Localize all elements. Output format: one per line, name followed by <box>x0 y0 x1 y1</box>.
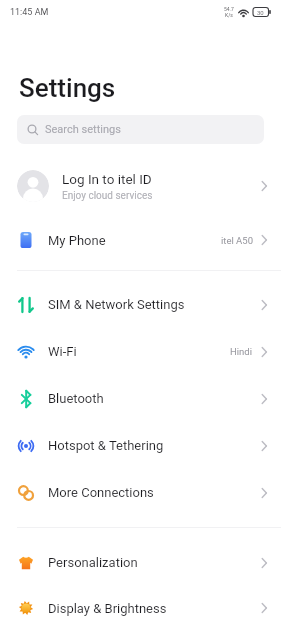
staticText: 54.7 <box>224 6 234 12</box>
button[interactable]: My Phone <box>0 213 281 267</box>
staticText: Bluetooth <box>48 391 104 406</box>
staticText: K/s <box>225 12 233 18</box>
staticText: Hotspot & Tethering <box>48 438 164 453</box>
staticText: My Phone <box>48 233 106 248</box>
staticText: Search settings <box>45 123 121 136</box>
button[interactable]: More Connections <box>0 469 281 516</box>
staticText: Settings <box>19 73 116 103</box>
staticText: Log In to itel ID <box>62 171 152 187</box>
staticText: SIM & Network Settings <box>48 297 185 312</box>
button[interactable]: Hotspot & Tethering <box>0 422 281 469</box>
staticText: 11:45 AM <box>10 7 49 18</box>
staticText: Hindi <box>230 346 253 357</box>
staticText: Wi-Fi <box>48 344 77 359</box>
button[interactable]: Search settings <box>17 115 264 144</box>
staticText: Personalization <box>48 555 138 570</box>
staticText: 30 <box>257 9 264 16</box>
staticText: Display & Brightness <box>48 601 167 616</box>
button[interactable]: SIM & Network Settings <box>0 281 281 328</box>
staticText: Enjoy cloud services <box>62 190 153 202</box>
staticText: More Connections <box>48 485 154 500</box>
button[interactable]: Personalization <box>0 539 281 586</box>
button[interactable]: Wi-Fi <box>0 328 281 375</box>
button[interactable]: Display & Brightness <box>0 586 281 630</box>
staticText: itel A50 <box>221 235 253 246</box>
button[interactable]: Log In to itel ID <box>0 159 281 213</box>
button[interactable]: Bluetooth <box>0 375 281 422</box>
